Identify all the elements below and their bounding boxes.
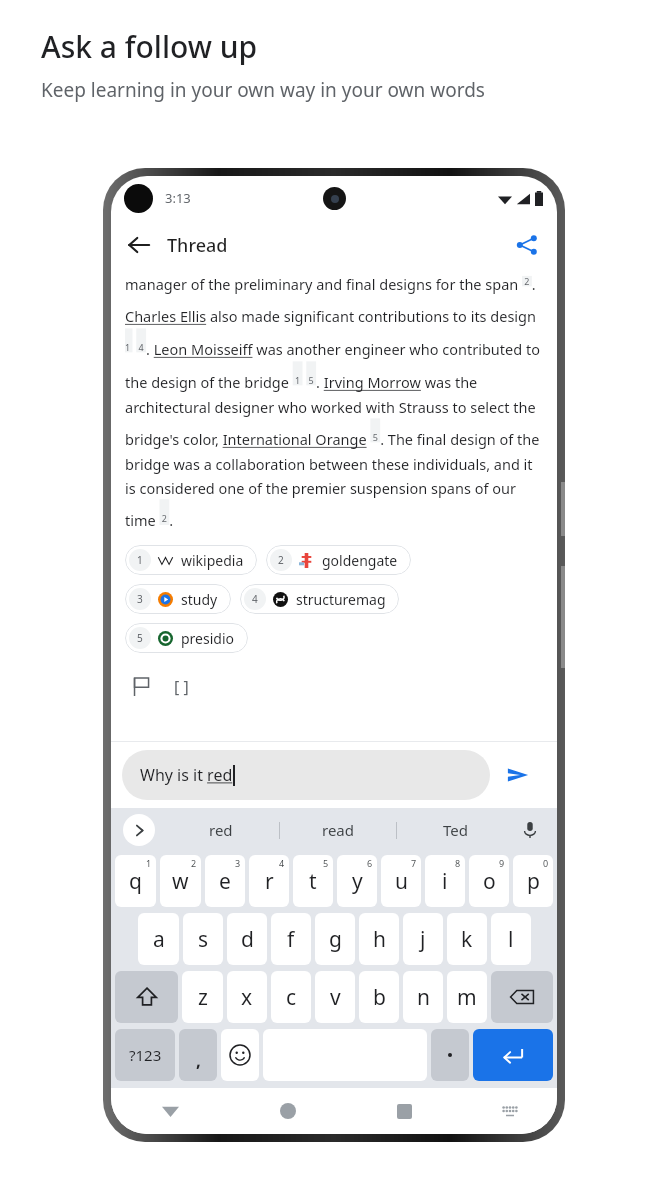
staticText: 9 [499,857,505,869]
button[interactable]: j [403,913,443,965]
button[interactable]: More suggestions [123,814,155,846]
button[interactable]: Why is it red [122,750,490,800]
button[interactable]: Recents [346,1088,463,1134]
button[interactable]: w [160,855,201,907]
button[interactable]: , [179,1029,217,1081]
button[interactable]: g [315,913,355,965]
button[interactable]: Voice input [513,813,547,847]
staticText: , [196,1049,201,1072]
button[interactable]: x [227,971,267,1023]
staticText: 1 [146,857,152,869]
button[interactable]: f [271,913,311,965]
staticText: q [129,867,142,896]
button[interactable]: 1 [125,545,257,575]
staticText: 8 [455,857,461,869]
staticText: s [198,925,209,954]
button[interactable]: Back [119,225,159,265]
staticText: [ ] [174,676,189,698]
button[interactable]: Report [121,667,161,707]
staticText: x [241,983,253,1012]
staticText: p [527,867,540,896]
button[interactable] [473,1029,553,1081]
staticText: read [322,820,354,840]
button[interactable] [431,1029,469,1081]
button[interactable]: i [425,855,465,907]
staticText: t [309,867,317,896]
button[interactable]: ?123 [115,1029,175,1081]
staticText: 4 [252,592,258,606]
button[interactable]: s [183,913,223,965]
staticText: g [329,925,342,954]
button[interactable]: e [205,855,245,907]
staticText: u [395,867,408,896]
button[interactable]: a [138,913,179,965]
button[interactable] [491,971,553,1023]
button[interactable]: 3 [125,584,231,614]
button[interactable]: q [115,855,156,907]
staticText: d [241,925,254,954]
button[interactable]: Home [229,1088,346,1134]
button[interactable]: read [280,808,396,852]
button[interactable]: h [359,913,399,965]
button[interactable]: z [182,971,223,1023]
staticText: Thread [167,233,228,258]
button[interactable]: u [381,855,421,907]
staticText: presidio [181,629,235,648]
staticText: j [420,925,426,954]
staticText: 5 [323,857,329,869]
button[interactable]: k [447,913,487,965]
button[interactable]: r [249,855,289,907]
staticText: a [153,925,165,954]
button[interactable] [115,971,178,1023]
button[interactable]: Ted [397,808,513,852]
button[interactable]: v [315,971,355,1023]
staticText: 7 [411,857,417,869]
staticText: Ted [443,820,468,840]
button[interactable]: m [447,971,487,1023]
button[interactable]: Hide keyboard [463,1088,557,1134]
staticText: Keep learning in your own way in your ow… [41,77,485,103]
button[interactable]: b [359,971,399,1023]
button[interactable]: 5 [125,623,248,653]
staticText: manager of the preliminary and final des… [125,274,543,531]
button[interactable]: l [491,913,531,965]
button[interactable]: o [469,855,509,907]
staticText: i [442,867,448,896]
button[interactable]: Back [111,1088,229,1134]
staticText: 2 [278,553,284,567]
button[interactable]: Share [507,225,547,265]
staticText: 3:13 [165,189,191,207]
button[interactable]: d [227,913,267,965]
button[interactable]: Citations [161,667,201,707]
staticText: 3 [137,592,143,606]
staticText: 1 [137,553,143,567]
staticText: structuremag [296,590,386,609]
staticText: w [172,867,189,896]
button[interactable]: n [403,971,443,1023]
button[interactable]: Send [490,750,546,800]
staticText: m [457,983,477,1012]
staticText: v [330,983,341,1012]
staticText: 2 [191,857,197,869]
staticText: goldengate [322,551,398,570]
staticText: o [483,867,496,896]
button[interactable]: t [293,855,333,907]
staticText: c [286,983,297,1012]
staticText: Why is it red [140,764,233,786]
staticText: 3 [235,857,241,869]
button[interactable]: 2 [266,545,411,575]
staticText: Ask a follow up [41,26,258,67]
staticText: 6 [367,857,373,869]
button[interactable]: red [163,808,279,852]
staticText: ?123 [129,1045,162,1065]
staticText: z [198,983,208,1012]
button[interactable]: p [513,855,553,907]
button[interactable] [221,1029,259,1081]
staticText: f [287,925,295,954]
button[interactable]: y [337,855,377,907]
button[interactable]: 4 [240,584,399,614]
button[interactable]: c [271,971,311,1023]
staticText: h [373,925,386,954]
staticText: y [352,867,363,896]
